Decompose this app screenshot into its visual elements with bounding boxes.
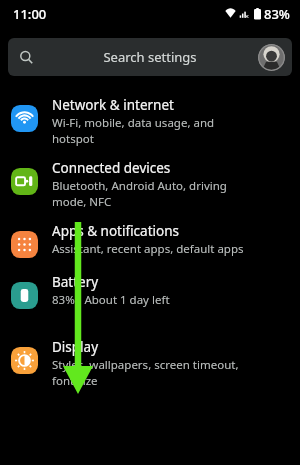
button[interactable]: Display: [0, 309, 300, 388]
staticText: Battery: [52, 273, 99, 291]
button[interactable]: Network & internet: [0, 76, 300, 146]
staticText: Bluetooth, Android Auto, driving mode, N…: [52, 178, 227, 209]
staticText: 83% - About 1 day left: [52, 292, 170, 308]
button[interactable]: Connected devices: [0, 146, 300, 209]
staticText: Display: [52, 338, 99, 356]
button[interactable]: Account: [258, 44, 285, 71]
staticText: Connected devices: [52, 159, 171, 177]
button[interactable]: Apps & notifications: [0, 209, 300, 258]
staticText: Styles, wallpapers, screen timeout, font…: [52, 357, 239, 388]
staticText: Wi-Fi, mobile, data usage, and hotspot: [52, 115, 215, 146]
staticText: Apps & notifications: [52, 222, 179, 240]
staticText: Network & internet: [52, 96, 174, 114]
staticText: 11:00: [13, 5, 47, 23]
staticText: Assistant, recent apps, default apps: [52, 241, 244, 257]
button[interactable]: Battery: [0, 258, 300, 309]
button[interactable]: Search: [8, 38, 292, 76]
other: Search: [19, 50, 34, 65]
staticText: 83%: [264, 5, 290, 23]
staticText: Search settings: [103, 48, 197, 66]
